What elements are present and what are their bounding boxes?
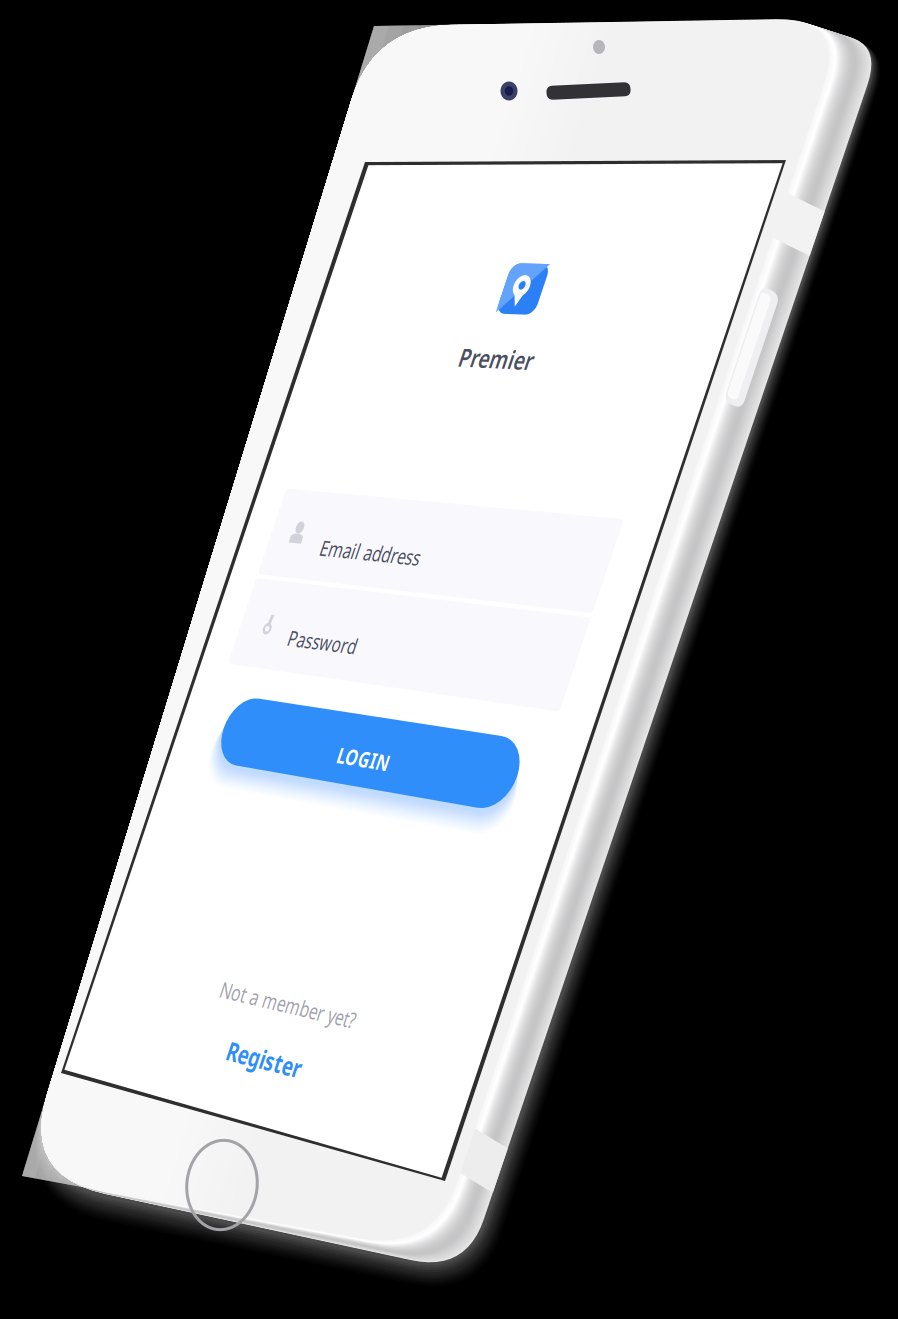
staticText: Password [293, 624, 360, 643]
button[interactable]: Password [0, 0, 898, 1319]
staticText: Not a member yet? [225, 975, 355, 994]
button[interactable]: LOGIN [0, 0, 898, 1319]
staticText: LOGIN [342, 740, 391, 760]
button[interactable]: Email address [0, 0, 898, 1319]
staticText: Register [233, 1033, 305, 1056]
staticText: Premier [465, 340, 533, 363]
button[interactable]: Register [0, 0, 898, 1319]
staticText: Email address [325, 533, 421, 553]
